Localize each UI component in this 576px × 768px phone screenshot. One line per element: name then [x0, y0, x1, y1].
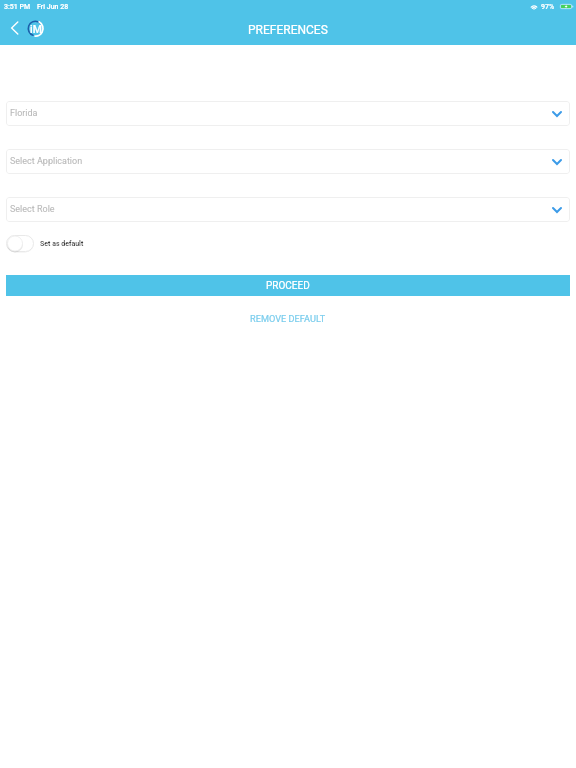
staticText: Fri Jun 28 — [37, 3, 69, 11]
staticText: 3:51 PM — [4, 3, 31, 11]
button[interactable]: Select Role — [6, 197, 570, 222]
staticText: Select Role — [10, 204, 55, 215]
staticText: Florida — [10, 108, 38, 119]
staticText: iM — [30, 23, 42, 35]
button[interactable]: PROCEED — [6, 275, 570, 296]
staticText: Select Application — [10, 156, 83, 167]
button[interactable]: Back — [6, 19, 24, 37]
staticText: REMOVE DEFAULT — [250, 313, 326, 324]
staticText: PREFERENCES — [248, 23, 328, 37]
staticText: 97% — [541, 3, 555, 11]
button[interactable]: Select Application — [6, 149, 570, 174]
staticText: PROCEED — [266, 280, 310, 292]
button[interactable]: REMOVE DEFAULT — [236, 309, 340, 328]
button[interactable]: Set as default — [6, 235, 84, 252]
staticText: Set as default — [40, 240, 84, 248]
other: Set as default — [6, 235, 34, 252]
button[interactable]: Florida — [6, 101, 570, 126]
